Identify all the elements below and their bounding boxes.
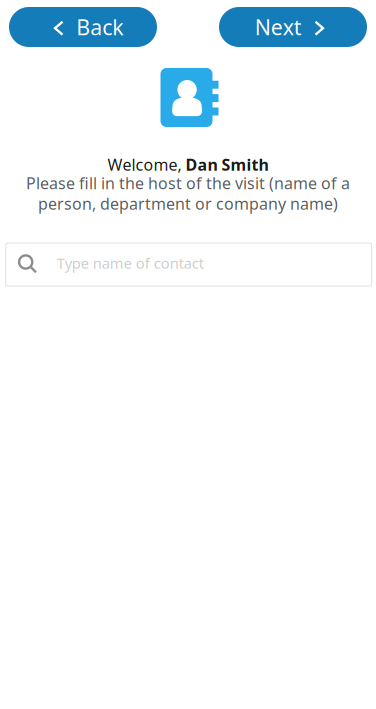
staticText: Next	[255, 13, 302, 41]
staticText: Welcome, Dan Smith	[107, 154, 268, 175]
button[interactable]: Back	[9, 7, 157, 47]
staticText: person, department or company name)	[38, 193, 338, 214]
button[interactable]: Next	[219, 7, 367, 47]
staticText: Type name of contact	[57, 253, 204, 273]
staticText: Please fill in the host of the visit (na…	[26, 172, 350, 194]
button[interactable]: Type name of contact	[6, 243, 372, 286]
staticText: Back	[76, 13, 123, 41]
